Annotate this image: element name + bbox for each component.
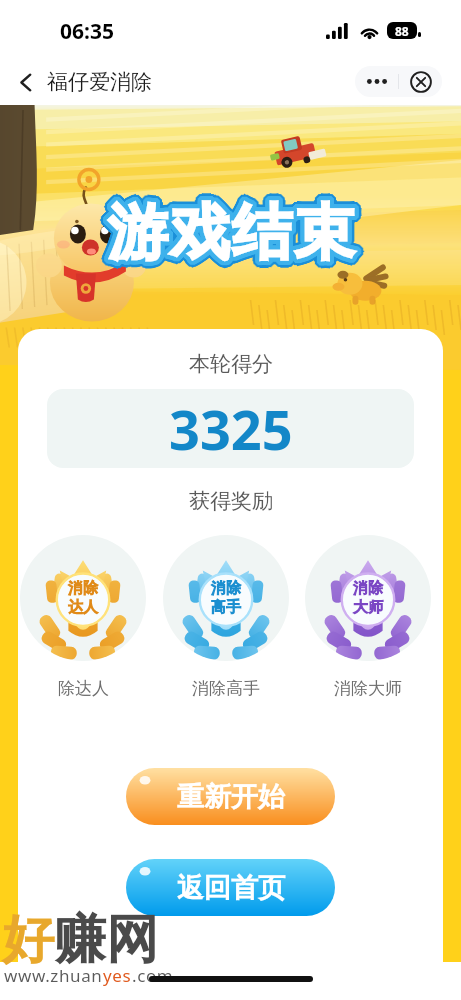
staticText: 游戏结束 [103, 195, 351, 271]
staticText: 游戏结束 [110, 201, 358, 277]
staticText: 消除大师 [334, 678, 402, 699]
staticText: 游戏结束 [108, 193, 356, 269]
staticText: 游戏结束 [111, 200, 359, 276]
staticText: 消除高手 [192, 678, 260, 699]
staticText: 游戏结束 [102, 191, 350, 267]
staticText: 游戏结束 [106, 194, 354, 270]
staticText: 游戏结束 [113, 194, 361, 270]
staticText: 游戏结束 [101, 193, 349, 269]
staticText: 游戏结束 [113, 197, 361, 273]
staticText: 高手 [211, 598, 241, 617]
staticText: 游戏结束 [109, 189, 357, 265]
staticText: 游戏结束 [104, 201, 352, 277]
staticText: 好 [2, 907, 54, 973]
staticText: 游戏结束 [103, 190, 351, 266]
button[interactable]: 更多 [355, 66, 398, 97]
staticText: 游戏结束 [110, 200, 358, 276]
staticText: 游戏结束 [101, 196, 349, 272]
staticText: 游戏结束 [112, 199, 360, 275]
staticText: 游戏结束 [105, 191, 353, 267]
staticText: 游戏结束 [104, 193, 352, 269]
staticText: 游戏结束 [110, 190, 358, 266]
staticText: 游戏结束 [111, 190, 359, 266]
staticText: 游戏结束 [108, 189, 356, 265]
staticText: 游戏结束 [106, 201, 354, 277]
staticText: 游戏结束 [107, 188, 355, 264]
staticText: 游戏结束 [110, 191, 358, 267]
staticText: 游戏结束 [109, 201, 357, 277]
staticText: 游戏结束 [104, 189, 352, 265]
staticText: 游戏结束 [104, 192, 352, 268]
staticText: 游戏结束 [106, 191, 354, 267]
staticText: 游戏结束 [105, 191, 353, 267]
button[interactable]: 返回首页 [126, 859, 335, 916]
staticText: 游戏结束 [111, 193, 359, 269]
staticText: 游戏结束 [105, 193, 353, 269]
staticText: 游戏结束 [110, 199, 358, 275]
staticText: 游戏结束 [106, 193, 354, 269]
staticText: 游戏结束 [109, 195, 357, 271]
staticText: 游戏结束 [108, 191, 356, 267]
staticText: 游戏结束 [111, 197, 359, 273]
staticText: 游戏结束 [101, 197, 349, 273]
staticText: 消除 [68, 579, 98, 598]
staticText: 游戏结束 [111, 192, 359, 268]
staticText: 游戏结束 [109, 191, 357, 267]
staticText: 游戏结束 [109, 200, 357, 276]
staticText: 游戏结束 [106, 189, 354, 265]
staticText: 游戏结束 [106, 195, 354, 271]
staticText: 游戏结束 [106, 192, 354, 268]
staticText: 06:35 [60, 17, 114, 46]
staticText: 大师 [353, 598, 383, 617]
staticText: 游戏结束 [110, 192, 358, 268]
staticText: 游戏结束 [101, 192, 349, 268]
staticText: 获得奖励 [189, 488, 273, 514]
staticText: 游戏结束 [111, 191, 359, 267]
staticText: 游戏结束 [112, 193, 360, 269]
staticText: 游戏结束 [104, 197, 352, 273]
staticText: 游戏结束 [109, 198, 357, 274]
staticText: 游戏结束 [105, 195, 353, 271]
staticText: 游戏结束 [107, 201, 355, 277]
staticText: 游戏结束 [110, 197, 358, 273]
staticText: 游戏结束 [111, 198, 359, 274]
staticText: 游戏结束 [110, 196, 358, 272]
staticText: .com [132, 964, 174, 987]
staticText: 游戏结束 [105, 190, 353, 266]
staticText: 游戏结束 [110, 193, 358, 269]
staticText: 游戏结束 [107, 199, 355, 275]
staticText: 游戏结束 [102, 196, 350, 272]
staticText: www.zhuan [4, 964, 103, 987]
staticText: 游戏结束 [109, 196, 357, 272]
staticText: 福仔爱消除 [47, 69, 152, 95]
staticText: 游戏结束 [105, 201, 353, 277]
staticText: 游戏结束 [100, 195, 348, 271]
staticText: 消除 [353, 579, 383, 598]
staticText: 游戏结束 [108, 201, 356, 277]
staticText: 游戏结束 [108, 195, 356, 271]
staticText: 游戏结束 [103, 191, 351, 267]
staticText: 游戏结束 [107, 192, 355, 268]
staticText: 游戏结束 [104, 198, 352, 274]
staticText: 游戏结束 [101, 195, 349, 271]
staticText: yes [103, 964, 132, 987]
staticText: 游戏结束 [103, 198, 351, 274]
staticText: 游戏结束 [103, 196, 351, 272]
staticText: 游戏结束 [114, 195, 362, 271]
staticText: 游戏结束 [111, 194, 359, 270]
staticText: 游戏结束 [102, 193, 350, 269]
staticText: 游戏结束 [105, 189, 353, 265]
staticText: 游戏结束 [112, 194, 360, 270]
staticText: 游戏结束 [110, 194, 358, 270]
staticText: 游戏结束 [103, 194, 351, 270]
button[interactable]: 返回 [9, 65, 43, 99]
staticText: 游戏结束 [103, 197, 351, 273]
staticText: 游戏结束 [109, 194, 357, 270]
staticText: 游戏结束 [113, 193, 361, 269]
staticText: 游戏结束 [106, 200, 354, 276]
button[interactable]: 关闭 [399, 66, 442, 97]
button[interactable]: 重新开始 [126, 768, 335, 825]
staticText: 游戏结束 [109, 192, 357, 268]
staticText: 游戏结束 [107, 189, 355, 265]
staticText: 游戏结束 [108, 199, 356, 275]
